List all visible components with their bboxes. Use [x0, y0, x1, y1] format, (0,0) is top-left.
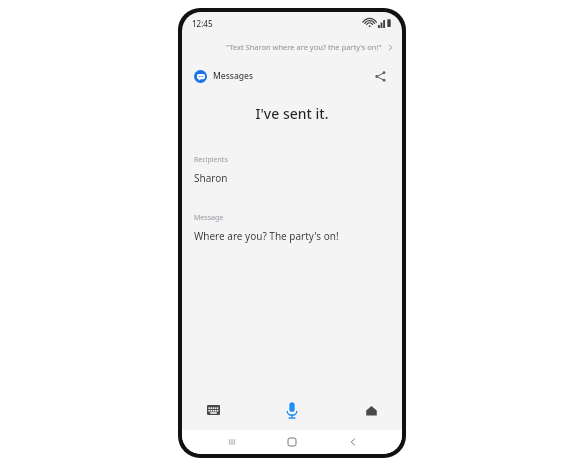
button[interactable]: Microphone: [277, 395, 307, 425]
staticText: Where are you? The party's on!: [194, 229, 339, 243]
button[interactable]: Share: [370, 66, 390, 86]
button[interactable]: "Text Sharon where are you? the party's …: [182, 34, 402, 60]
staticText: I've sent it.: [182, 104, 402, 123]
staticText: 12:45: [192, 18, 213, 29]
staticText: Message: [194, 213, 224, 223]
staticText: "Text Sharon where are you? the party's …: [226, 42, 382, 52]
staticText: Messages: [213, 70, 254, 82]
button[interactable]: Back: [342, 431, 364, 453]
button[interactable]: Keyboard: [200, 397, 226, 423]
button[interactable]: Home: [281, 431, 303, 453]
staticText: Sharon: [194, 171, 228, 185]
staticText: Recipients: [194, 155, 228, 165]
button[interactable]: Home: [358, 397, 384, 423]
button[interactable]: Recents: [221, 431, 243, 453]
